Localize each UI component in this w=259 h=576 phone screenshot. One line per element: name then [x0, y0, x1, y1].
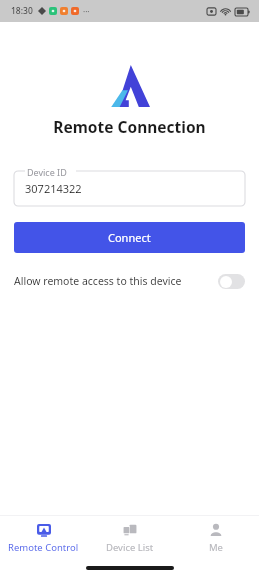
staticText: 307214322: [25, 181, 82, 196]
staticText: Remote Connection: [53, 116, 206, 137]
button[interactable]: Device List: [87, 516, 173, 560]
button[interactable]: Allow remote access to this device: [14, 268, 245, 294]
staticText: 18:30: [11, 5, 33, 17]
staticText: Me: [209, 541, 223, 554]
button[interactable]: 307214322: [14, 171, 245, 206]
button[interactable]: Remote Control: [0, 516, 87, 560]
button[interactable]: Me: [173, 516, 259, 560]
staticText: Remote Control: [8, 541, 79, 554]
staticText: Device List: [106, 541, 154, 554]
staticText: Device ID: [27, 166, 67, 178]
staticText: Connect: [108, 230, 151, 245]
staticText: ···: [83, 6, 90, 17]
button[interactable]: Connect: [14, 222, 245, 253]
staticText: Allow remote access to this device: [14, 274, 182, 288]
